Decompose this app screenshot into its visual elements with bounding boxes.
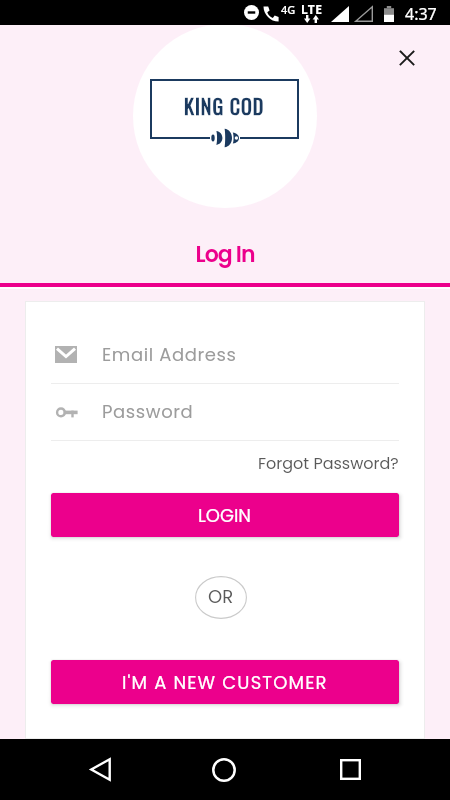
staticText: Password	[102, 399, 194, 424]
staticText: I'M A NEW CUSTOMER	[122, 670, 328, 695]
button[interactable]: Forgot Password?	[258, 452, 399, 474]
button[interactable]: Close	[386, 37, 427, 78]
button[interactable]: Back	[75, 744, 125, 795]
button[interactable]: Recents	[325, 744, 375, 795]
button[interactable]: I'M A NEW CUSTOMER	[51, 660, 399, 704]
staticText: OR	[208, 584, 234, 609]
button[interactable]: LOGIN	[51, 493, 399, 537]
staticText: Email Address	[102, 342, 237, 367]
staticText: LOGIN	[198, 503, 252, 528]
staticText: LTE	[301, 1, 323, 17]
button[interactable]: Home	[199, 744, 249, 795]
button[interactable]: OR	[195, 576, 247, 619]
staticText: 4:37	[405, 3, 437, 25]
staticText: 4G	[281, 2, 296, 17]
staticText: Log In	[0, 239, 450, 270]
staticText: KING COD	[184, 91, 265, 121]
